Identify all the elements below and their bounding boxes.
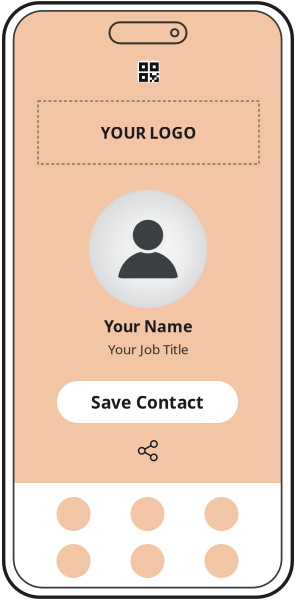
staticText: Save Contact (91, 390, 204, 413)
staticText: Your Name (104, 315, 193, 337)
staticText: YOUR LOGO (100, 122, 196, 143)
staticText: Your Job Title (108, 340, 189, 358)
button[interactable]: Save Contact (57, 381, 238, 423)
button[interactable]: Show QR code (137, 60, 159, 82)
button[interactable]: Share contact (138, 439, 158, 461)
